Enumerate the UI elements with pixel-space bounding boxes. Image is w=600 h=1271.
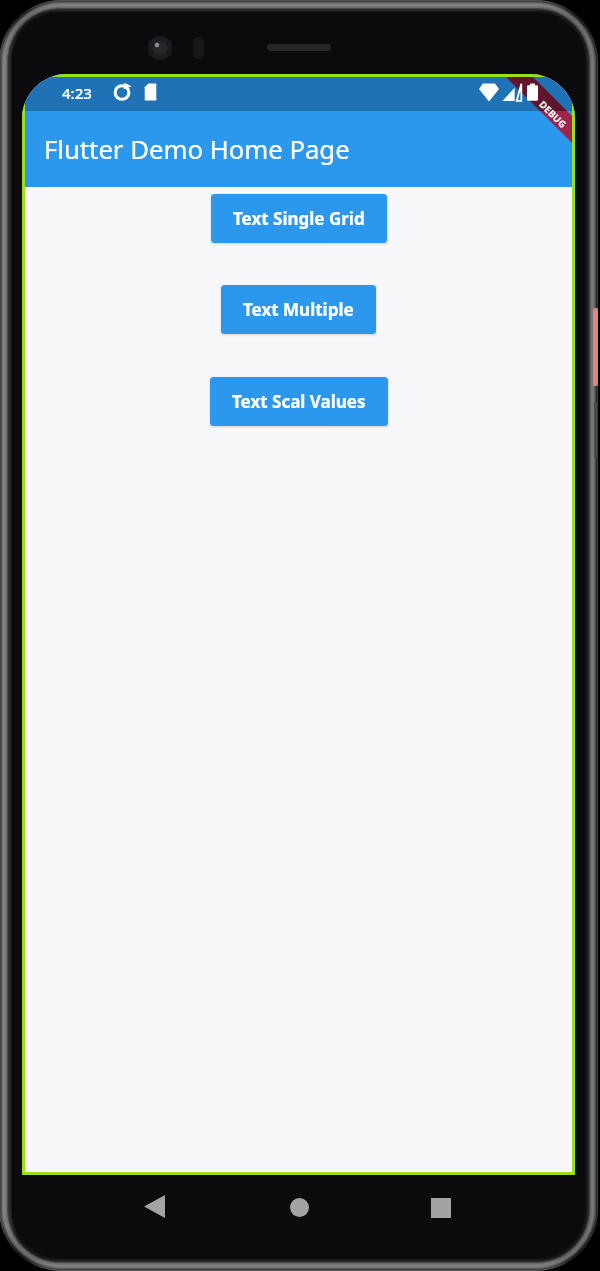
button[interactable]: Text Single Grid [211, 194, 387, 243]
button[interactable]: Back [134, 1186, 174, 1226]
staticText: 4:23 [62, 83, 92, 103]
staticText: Text Single Grid [233, 207, 365, 230]
button[interactable]: Text Scal Values [210, 377, 388, 426]
staticText: Flutter Demo Home Page [44, 132, 350, 167]
staticText: Text Scal Values [232, 390, 366, 413]
staticText: Text Multiple [243, 298, 354, 321]
button[interactable]: Recents [421, 1188, 461, 1228]
button[interactable]: Home [279, 1187, 319, 1227]
staticText: DEBUG [536, 98, 570, 131]
button[interactable]: Text Multiple [221, 285, 376, 334]
